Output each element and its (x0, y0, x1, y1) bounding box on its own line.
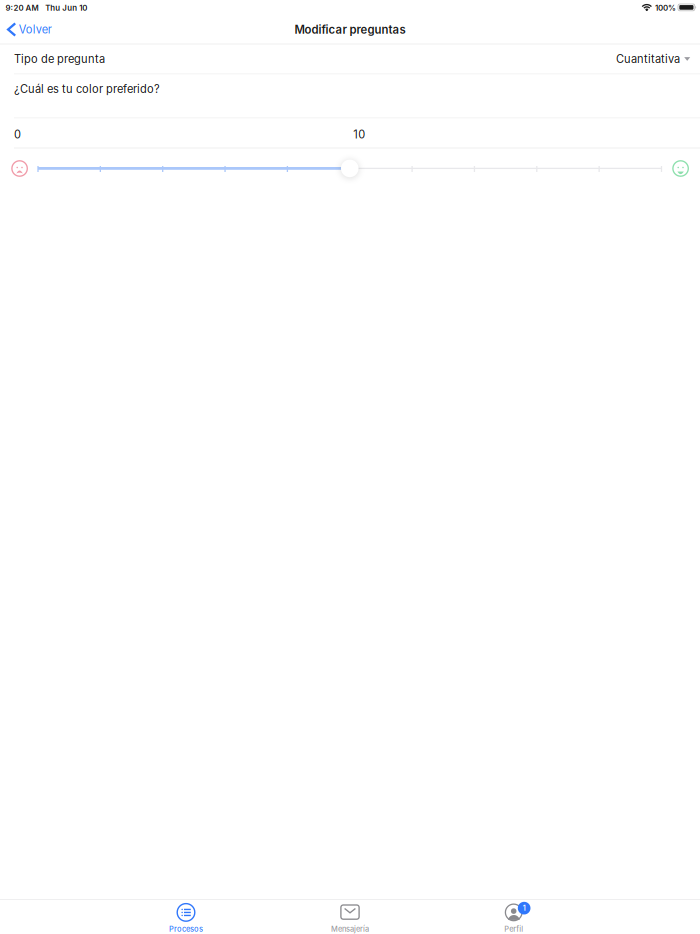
button[interactable]: Procesos (126, 903, 246, 934)
staticText: Perfil (504, 925, 523, 934)
staticText: 100% (655, 3, 676, 13)
button[interactable]: Volver (0, 16, 60, 43)
staticText: ¿Cuál es tu color preferido? (14, 82, 160, 96)
button[interactable]: Deslizador de valor (337, 155, 363, 181)
staticText: Procesos (169, 925, 203, 934)
staticText: Cuantitativa (616, 52, 680, 66)
staticText: Modificar preguntas (294, 23, 405, 37)
staticText: 10 (353, 128, 365, 141)
staticText: 1 (523, 904, 526, 912)
staticText: Tipo de pregunta (14, 52, 105, 66)
staticText: 9:20 AM (5, 3, 38, 13)
button[interactable]: ¿Cuál es tu color preferido? (0, 74, 700, 117)
button[interactable]: Mensajería (290, 903, 410, 934)
staticText: 0 (14, 128, 21, 141)
button[interactable]: 1 (454, 903, 574, 934)
staticText: Thu Jun 10 (45, 3, 87, 13)
staticText: Volver (19, 23, 52, 36)
button[interactable]: Tipo de pregunta (0, 44, 700, 73)
staticText: Mensajería (331, 925, 369, 934)
